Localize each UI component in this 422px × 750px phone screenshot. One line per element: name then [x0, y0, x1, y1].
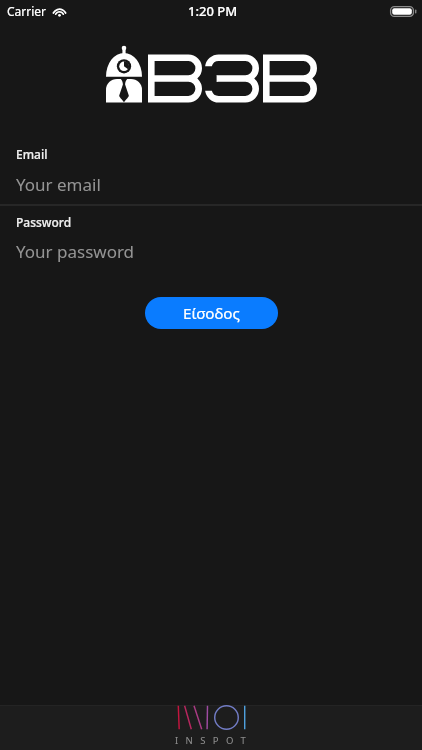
- staticText: 1:20 PM: [188, 2, 238, 20]
- staticText: Your email: [16, 173, 101, 196]
- staticText: Carrier: [7, 3, 47, 19]
- button[interactable]: Είσοδος: [145, 297, 278, 329]
- staticText: Your password: [16, 240, 135, 263]
- staticText: Password: [16, 214, 72, 230]
- staticText: Είσοδος: [183, 303, 240, 324]
- button[interactable]: Your email: [0, 169, 422, 199]
- button[interactable]: Your password: [0, 236, 422, 266]
- staticText: INSPOT: [175, 734, 254, 747]
- staticText: Email: [16, 146, 48, 162]
